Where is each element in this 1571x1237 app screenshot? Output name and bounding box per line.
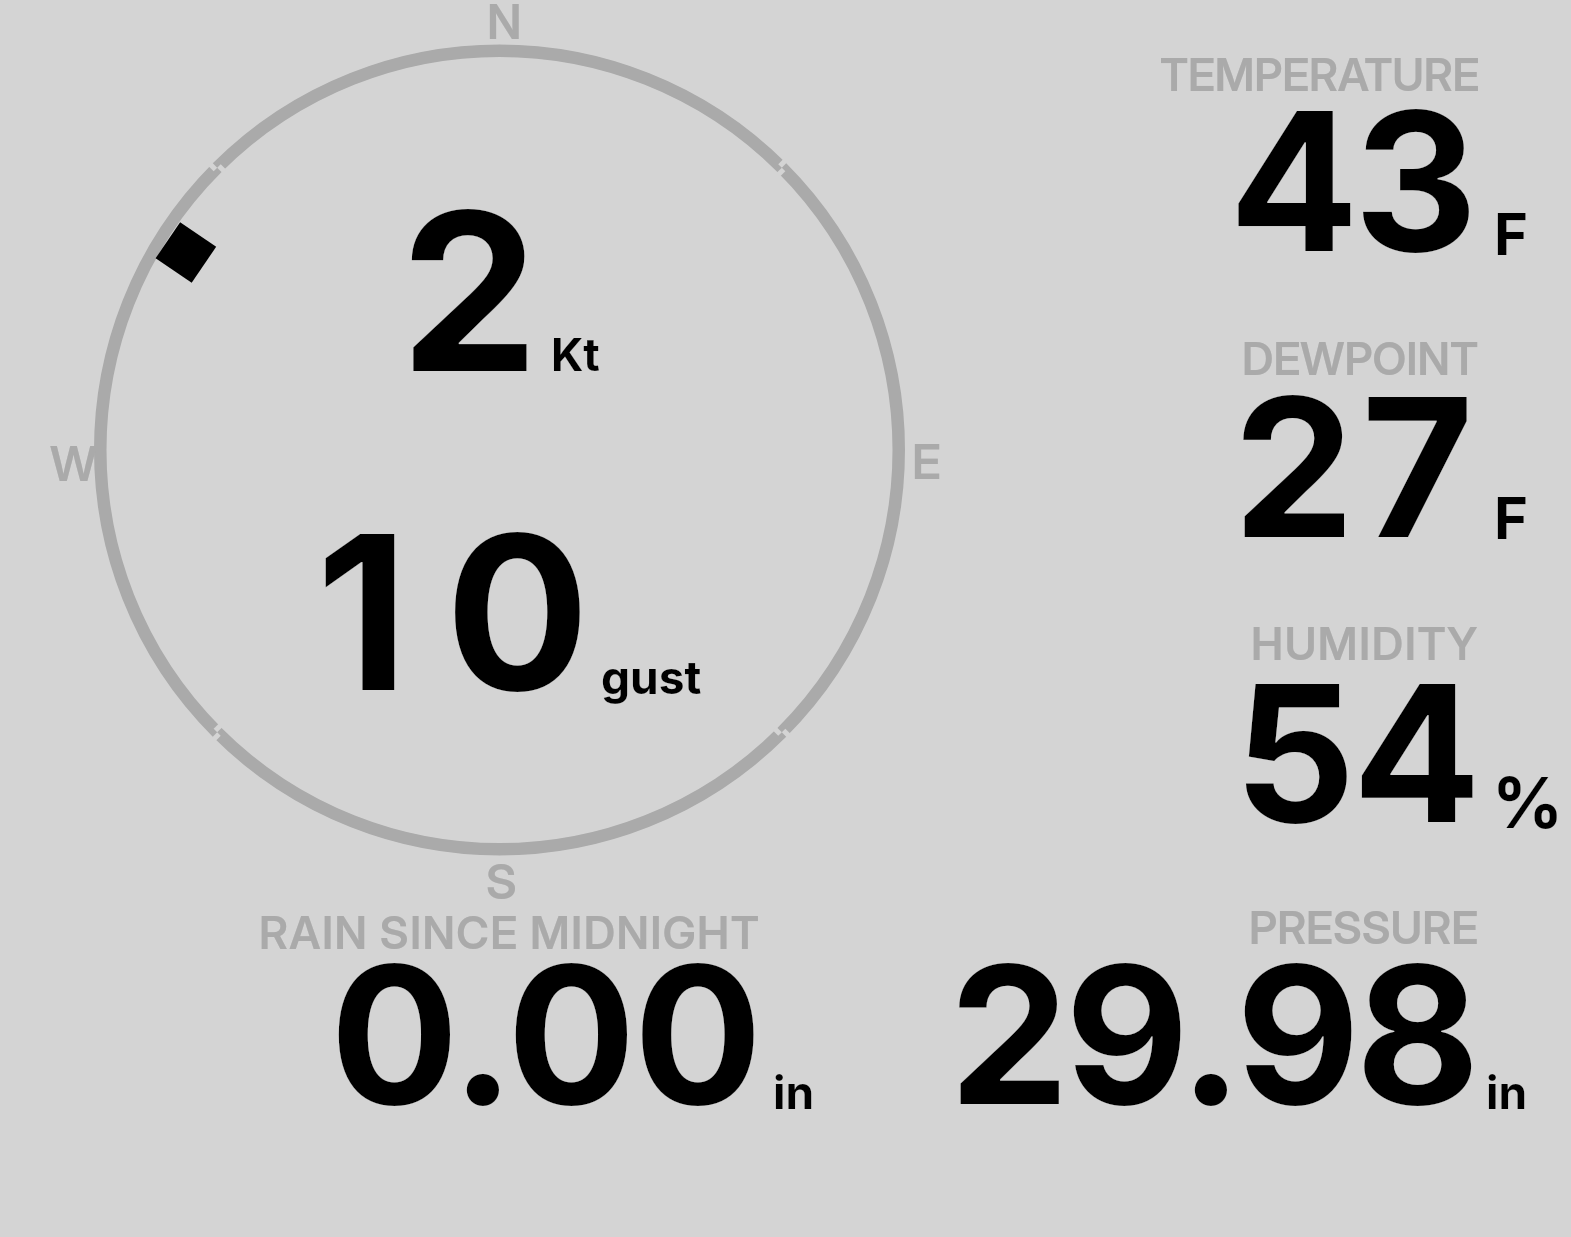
- staticText: E: [912, 432, 941, 490]
- button[interactable]: Wind direction compass, wind from the no…: [86, 36, 914, 864]
- staticText: gust: [601, 649, 702, 705]
- staticText: 54: [1234, 638, 1478, 868]
- staticText: N: [487, 0, 522, 50]
- button[interactable]: Dewpoint 27 degrees Fahrenheit: [1140, 312, 1560, 592]
- staticText: HUMIDITY: [1251, 616, 1479, 670]
- button[interactable]: Rain since midnight 0.00 inches: [240, 888, 860, 1148]
- staticText: 10: [316, 483, 627, 742]
- staticText: F: [1494, 199, 1529, 269]
- staticText: RAIN SINCE MIDNIGHT: [259, 905, 761, 959]
- staticText: 43: [1229, 65, 1473, 297]
- button[interactable]: Temperature 43 degrees Fahrenheit: [1140, 28, 1560, 308]
- staticText: S: [486, 852, 517, 910]
- staticText: in: [1486, 1064, 1528, 1120]
- staticText: %: [1492, 760, 1564, 845]
- staticText: 29.98: [949, 919, 1476, 1150]
- staticText: TEMPERATURE: [1160, 47, 1480, 101]
- staticText: 0.00: [330, 919, 761, 1150]
- staticText: in: [773, 1064, 815, 1120]
- staticText: Kt: [551, 327, 600, 381]
- button[interactable]: Humidity 54 percent: [1140, 598, 1560, 878]
- staticText: 2: [400, 158, 539, 424]
- staticText: F: [1494, 483, 1529, 553]
- staticText: PRESSURE: [1249, 900, 1479, 954]
- staticText: 27: [1233, 350, 1481, 584]
- staticText: DEWPOINT: [1242, 331, 1479, 385]
- staticText: W: [50, 434, 98, 492]
- button[interactable]: Barometric pressure 29.98 inches: [900, 888, 1560, 1148]
